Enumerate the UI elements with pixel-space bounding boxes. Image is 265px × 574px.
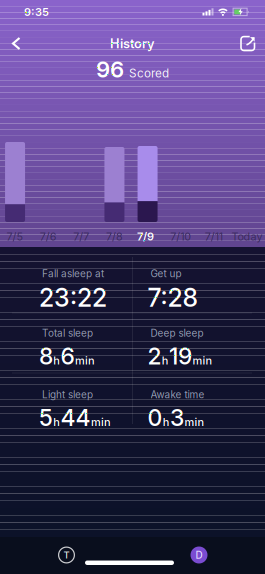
staticText: History	[110, 36, 155, 51]
staticText: T	[63, 549, 69, 561]
button[interactable]: Back	[0, 28, 21, 59]
staticText: Scored	[129, 66, 169, 80]
staticText: 6	[61, 342, 75, 370]
staticText: h	[53, 415, 60, 428]
staticText: 5	[39, 404, 53, 431]
staticText: 19	[169, 342, 192, 370]
staticText: Today	[231, 230, 262, 243]
staticText: 7/8	[106, 230, 123, 243]
staticText: Fall asleep at	[42, 267, 104, 280]
staticText: min	[184, 415, 204, 428]
button[interactable]: D	[190, 546, 207, 563]
staticText: 7/5	[7, 230, 24, 243]
button[interactable]: T	[58, 546, 75, 563]
staticText: min	[91, 415, 111, 428]
button[interactable]: 7/8	[98, 130, 131, 247]
staticText: h	[53, 354, 60, 367]
staticText: 7/6	[40, 230, 57, 243]
button[interactable]: Share	[239, 28, 265, 59]
staticText: 3	[170, 404, 184, 431]
staticText: Deep sleep	[150, 327, 203, 339]
staticText: 44	[61, 404, 91, 431]
staticText: 7/9	[137, 230, 154, 243]
button[interactable]: 7/5	[0, 130, 32, 247]
staticText: 7/10	[170, 230, 191, 243]
staticText: h	[163, 415, 170, 428]
staticText: Awake time	[150, 388, 204, 401]
button[interactable]: 7/11	[197, 130, 230, 247]
staticText: min	[75, 354, 95, 367]
button[interactable]: 7/10	[164, 130, 197, 247]
staticText: 7/7	[73, 230, 89, 243]
staticText: 2	[147, 342, 161, 370]
staticText: 23:22	[39, 283, 107, 313]
staticText: 96	[96, 56, 124, 83]
staticText: D	[195, 549, 202, 561]
button[interactable]: 7/9	[131, 130, 164, 247]
staticText: Light sleep	[42, 388, 93, 401]
staticText: 7/11	[205, 230, 223, 243]
staticText: 9:35	[24, 5, 49, 19]
staticText: h	[162, 354, 169, 367]
button[interactable]: Today	[230, 130, 263, 247]
staticText: Get up	[150, 267, 181, 280]
staticText: 8	[39, 342, 53, 370]
staticText: min	[192, 354, 212, 367]
staticText: 0	[147, 404, 162, 431]
button[interactable]: 7/7	[65, 130, 98, 247]
staticText: 7:28	[147, 283, 197, 313]
staticText: Total sleep	[42, 327, 93, 339]
button[interactable]: 7/6	[32, 130, 65, 247]
